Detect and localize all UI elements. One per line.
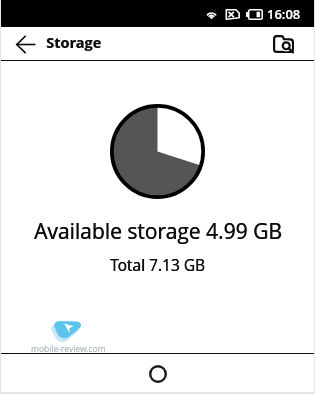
staticText: Storage bbox=[46, 33, 102, 53]
button[interactable]: Browse files bbox=[269, 30, 297, 58]
staticText: 16:08 bbox=[267, 5, 301, 23]
staticText: Available storage 4.99 GB bbox=[34, 217, 282, 246]
staticText: mobile-review.com bbox=[31, 343, 106, 355]
staticText: Total 7.13 GB bbox=[110, 254, 205, 275]
button[interactable]: Back bbox=[14, 33, 36, 55]
button[interactable]: Home bbox=[145, 361, 171, 387]
staticText: Total 7.13 GB bbox=[110, 254, 205, 275]
staticText: Available storage 4.99 GB bbox=[34, 217, 282, 246]
staticText: Storage bbox=[46, 33, 102, 53]
staticText: Total 7.13 GB bbox=[110, 254, 205, 275]
staticText: Available storage 4.99 GB bbox=[34, 217, 282, 246]
